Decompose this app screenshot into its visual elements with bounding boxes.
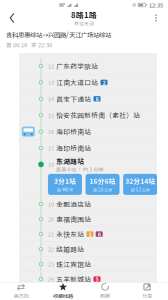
staticText: 怡安花园新桥南（素社）站 xyxy=(56,110,140,120)
button[interactable]: 23 xyxy=(19,257,157,271)
staticText: 13 xyxy=(48,78,54,86)
staticText: 32分14站 xyxy=(125,176,155,186)
staticText: 18 xyxy=(48,160,54,168)
button[interactable]: 16分6站 xyxy=(85,174,119,195)
staticText: 贵科思惠综站→兴园路/天江广场站综站 xyxy=(6,30,111,39)
button[interactable]: 刷新 xyxy=(84,282,126,300)
staticText: 17 xyxy=(48,144,54,152)
staticText: 24 xyxy=(48,275,54,283)
button[interactable]: 18 xyxy=(19,156,157,172)
staticText: 末 22:30 xyxy=(31,41,52,49)
staticText: 东湖路站 xyxy=(56,156,84,166)
staticText: 21 xyxy=(48,230,54,238)
staticText: 23 xyxy=(48,260,54,268)
button[interactable]: 32分14站 xyxy=(123,174,157,195)
staticText: 19 xyxy=(48,200,54,208)
staticText: 22 xyxy=(48,245,54,253)
staticText: 距离 4 站 · 约 3 分钟 xyxy=(56,166,103,173)
staticText: 珠江宾馆站 xyxy=(56,259,91,269)
staticText: 8 xyxy=(95,95,98,103)
staticText: 分享 xyxy=(142,292,152,300)
staticText: 15 xyxy=(48,111,54,119)
button[interactable]: 21 xyxy=(19,227,157,241)
button[interactable]: 19 xyxy=(19,197,157,211)
staticText: 海印桥南站 xyxy=(56,143,91,153)
staticText: 换方向 xyxy=(13,292,28,300)
staticText: 五羊新城站 xyxy=(56,274,91,284)
button[interactable]: 换方向 xyxy=(0,282,42,300)
staticText: 5 xyxy=(95,275,98,283)
button[interactable]: 16 xyxy=(19,124,157,140)
staticText: 16分6站 xyxy=(89,176,115,186)
staticText: 海印桥南站 xyxy=(56,127,91,136)
staticText: 江南大道口站 xyxy=(56,78,98,87)
button[interactable]: 17 xyxy=(19,140,157,156)
staticText: 距 2.6 公里 xyxy=(93,186,112,193)
staticText: 2 xyxy=(102,78,105,86)
staticText: 永快东站 xyxy=(56,229,84,239)
staticText: 3分1站 xyxy=(54,176,76,186)
staticText: 惠福南围站 xyxy=(56,214,91,224)
button[interactable]: 20 xyxy=(19,212,157,226)
staticText: 首 06:19 xyxy=(6,41,27,49)
button[interactable]: 15 xyxy=(19,107,157,123)
button[interactable]: More xyxy=(148,10,164,26)
staticText: 刷新 xyxy=(100,292,110,300)
staticText: 12 xyxy=(48,62,54,70)
staticText: 广东药学院站 xyxy=(56,61,98,71)
staticText: 1 xyxy=(88,230,91,238)
staticText: 14 xyxy=(48,95,54,103)
staticText: 8路1路 xyxy=(71,9,97,20)
button[interactable]: 3分1站 xyxy=(48,174,82,195)
staticText: 距 5.3 公里 xyxy=(131,186,150,193)
staticText: 6 xyxy=(98,230,101,238)
button[interactable]: 22 xyxy=(19,242,157,256)
button[interactable]: 12 xyxy=(19,58,157,74)
button[interactable]: 24 xyxy=(19,272,157,286)
staticText: 20 xyxy=(48,215,54,223)
button[interactable]: 14 xyxy=(19,91,157,107)
button[interactable]: Back xyxy=(4,10,20,26)
button[interactable]: 分享 xyxy=(126,282,168,300)
staticText: 12:35 xyxy=(149,1,163,9)
button[interactable]: 收藏线路 xyxy=(42,282,84,300)
staticText: 16 xyxy=(48,127,54,136)
staticText: 距 440 米 xyxy=(57,186,73,193)
button[interactable]: 13 xyxy=(19,74,157,90)
staticText: 金鹏酒店站 xyxy=(56,199,91,209)
staticText: 收藏线路 xyxy=(53,292,73,300)
staticText: 开往天河 xyxy=(74,20,94,27)
staticText: 结婚路站 xyxy=(56,244,84,254)
staticText: 昌宝下通站 xyxy=(56,94,91,104)
